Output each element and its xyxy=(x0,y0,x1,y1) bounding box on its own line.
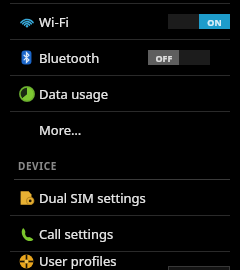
button[interactable]: Bluetooth toggle off xyxy=(148,50,210,65)
staticText: OFF xyxy=(155,52,173,64)
staticText: Data usage xyxy=(39,85,230,103)
staticText: Dual SIM settings xyxy=(39,189,230,207)
button[interactable]: Wi-Fi xyxy=(0,4,240,39)
staticText: DEVICE xyxy=(18,159,57,173)
button[interactable]: Bluetooth xyxy=(0,40,240,75)
staticText: ON xyxy=(207,16,222,28)
staticText: Wi-Fi xyxy=(39,13,168,31)
staticText: Call settings xyxy=(39,225,230,243)
staticText: User profiles xyxy=(39,252,168,270)
button[interactable]: More… xyxy=(0,112,240,147)
staticText: Bluetooth xyxy=(39,49,168,67)
button[interactable]: Wi-Fi toggle on xyxy=(168,14,230,29)
button[interactable]: Call settings xyxy=(0,216,240,251)
button[interactable]: Data usage xyxy=(0,76,240,111)
staticText: More… xyxy=(39,121,230,139)
button[interactable]: User profiles toggle xyxy=(168,266,230,270)
button[interactable]: Dual SIM settings xyxy=(0,180,240,215)
button[interactable]: User profiles xyxy=(0,252,240,270)
